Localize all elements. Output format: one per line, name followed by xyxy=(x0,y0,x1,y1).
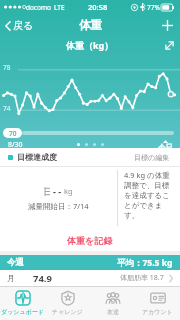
staticText: 月 xyxy=(7,273,15,283)
button[interactable]: 戻る xyxy=(0,16,40,35)
staticText: 戻る xyxy=(13,19,34,32)
staticText: 減量開始日：7/14 xyxy=(28,201,89,211)
staticText: 今日 xyxy=(158,143,173,148)
button[interactable]: 体重を記録 xyxy=(0,229,180,251)
staticText: 78 xyxy=(3,63,11,72)
staticText: 70 xyxy=(9,129,17,138)
staticText: アカウント xyxy=(142,308,173,316)
staticText: 目標の編集 xyxy=(134,153,170,162)
staticText: 目標達成度 xyxy=(17,152,57,162)
staticText: LTE xyxy=(54,3,65,12)
staticText: 74 xyxy=(3,104,11,113)
staticText: docomo xyxy=(26,3,51,12)
staticText: - - xyxy=(53,185,62,197)
button[interactable]: 友達 xyxy=(90,287,135,320)
staticText: ダッシュボード xyxy=(1,308,44,316)
staticText: 今週 xyxy=(7,257,24,268)
staticText: 8/30 xyxy=(8,140,23,148)
staticText: 77% xyxy=(147,3,160,12)
button[interactable]: 拡大 xyxy=(159,38,180,53)
staticText: 体重（kg） xyxy=(66,39,114,51)
staticText: 体重 xyxy=(79,18,102,32)
staticText: 20:58 xyxy=(88,2,108,12)
staticText: 体重を記録 xyxy=(67,235,113,246)
button[interactable]: 追加 xyxy=(155,16,180,35)
staticText: 体脂肪率 18.7 xyxy=(120,273,164,283)
button[interactable]: 目標の編集 xyxy=(132,151,172,164)
button[interactable]: アカウント xyxy=(135,287,180,320)
staticText: kg xyxy=(64,186,73,196)
button[interactable]: チャレンジ xyxy=(45,287,90,320)
button[interactable]: 70 xyxy=(3,128,22,138)
staticText: 平均：75.5 kg xyxy=(117,257,173,269)
staticText: 友達 xyxy=(107,308,119,316)
button[interactable]: ダッシュボード xyxy=(0,287,45,320)
button[interactable]: 月 xyxy=(0,270,180,286)
staticText: 74.9 xyxy=(33,272,52,285)
staticText: チャレンジ xyxy=(52,308,83,316)
staticText: 4.9 kg の体重調整で、目標を達成することができます。 xyxy=(124,170,176,221)
